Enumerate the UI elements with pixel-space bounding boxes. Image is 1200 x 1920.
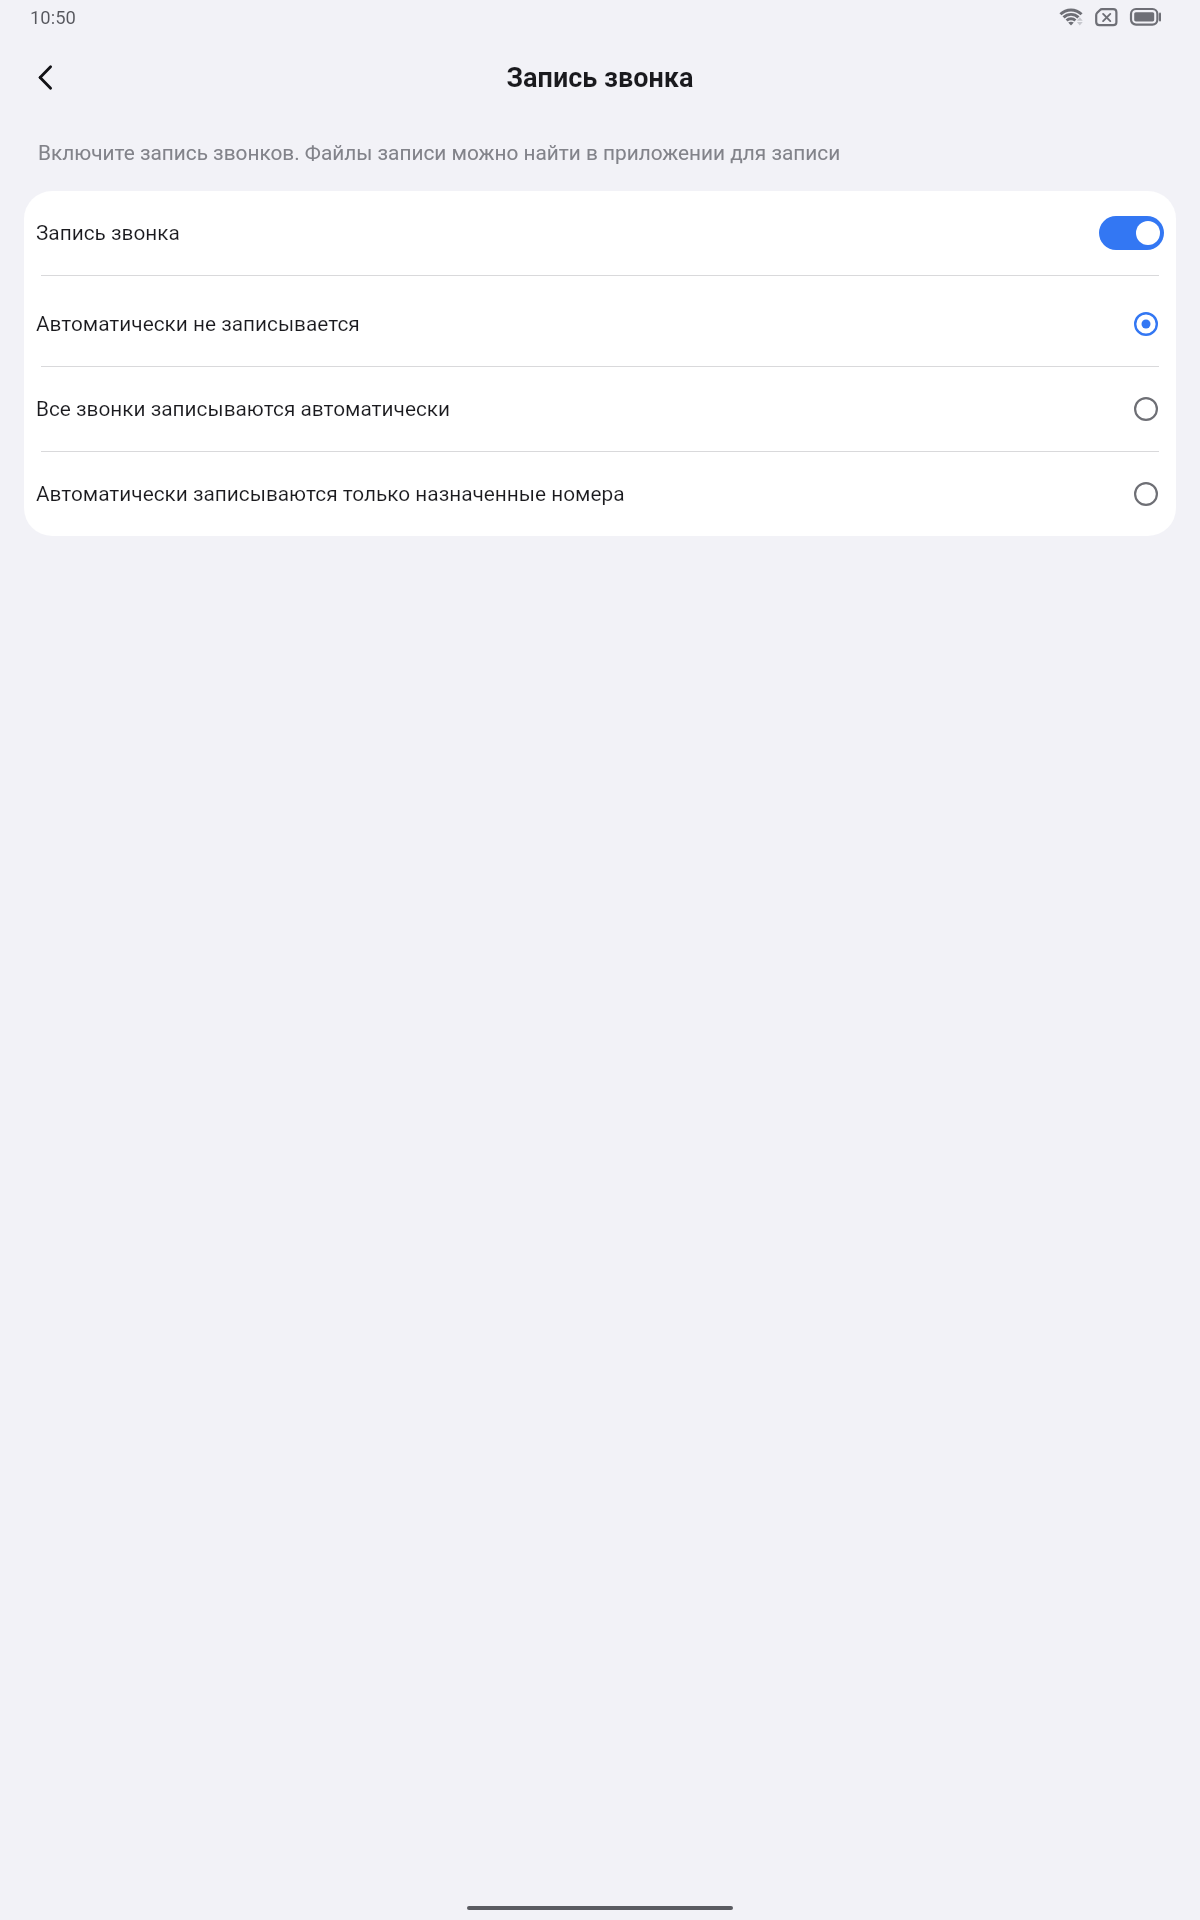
button[interactable]: Автоматически записываются только назнач… (24, 452, 1176, 536)
staticText: Все звонки записываются автоматически (36, 397, 1134, 421)
button[interactable]: Запись звонка (24, 191, 1176, 275)
staticText: Включите запись звонков. Файлы записи мо… (38, 141, 841, 165)
button[interactable]: Автоматически не записывается (24, 281, 1176, 366)
button[interactable]: Toggle call recording (1099, 216, 1164, 250)
staticText: Запись звонка (36, 221, 1099, 245)
button[interactable]: Option (1134, 397, 1158, 421)
button[interactable]: Selected option (1134, 312, 1158, 336)
staticText: Автоматически не записывается (36, 312, 1134, 336)
staticText: 10:50 (30, 7, 76, 29)
button[interactable]: Все звонки записываются автоматически (24, 367, 1176, 451)
staticText: Автоматически записываются только назнач… (36, 482, 1134, 506)
button[interactable]: Back (17, 50, 73, 106)
staticText: Запись звонка (506, 62, 694, 94)
button[interactable]: Option (1134, 482, 1158, 506)
